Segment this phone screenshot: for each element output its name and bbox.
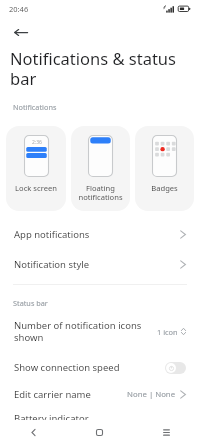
button[interactable]: Notification style — [0, 249, 200, 279]
staticText: Status bar — [13, 298, 48, 308]
button[interactable]: Recent apps — [133, 420, 200, 444]
button[interactable]: Badges — [135, 126, 194, 211]
staticText: Notifications — [13, 102, 57, 112]
button[interactable]: Home — [66, 420, 133, 444]
staticText: Badges — [151, 183, 178, 193]
button[interactable]: 2:36 — [6, 126, 66, 211]
button[interactable]: Floating notifications — [71, 126, 130, 211]
staticText: Lock screen — [15, 183, 57, 193]
button[interactable]: App notifications — [0, 219, 200, 249]
button[interactable]: Back — [0, 18, 200, 46]
staticText: 1 icon — [157, 327, 178, 337]
staticText: Edit carrier name — [14, 388, 91, 401]
button[interactable]: Show connection speed — [0, 351, 200, 384]
staticText: Notification style — [14, 258, 90, 271]
button[interactable]: Number of notification icons shown — [0, 312, 200, 351]
staticText: Floating notifications — [78, 183, 123, 203]
staticText: Show connection speed — [14, 361, 120, 374]
staticText: App notifications — [14, 228, 90, 241]
button[interactable]: Back — [0, 420, 66, 444]
button[interactable]: Edit carrier name — [0, 384, 200, 405]
staticText: None | None — [127, 389, 176, 400]
staticText: Notifications & status bar — [10, 47, 194, 90]
staticText: Number of notification icons shown — [14, 319, 149, 344]
staticText: Battery indicator — [14, 412, 89, 420]
staticText: 2:36 — [32, 139, 42, 146]
staticText: 20:46 — [9, 4, 29, 14]
